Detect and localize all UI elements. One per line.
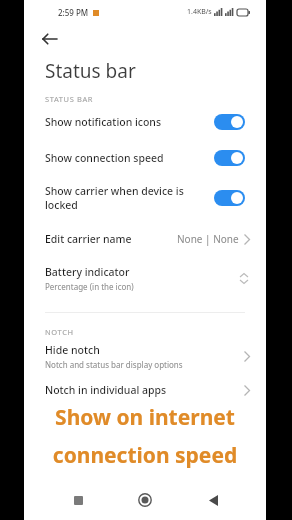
button[interactable]: Show carrier when device is locked bbox=[24, 176, 266, 220]
staticText: Show notification icons bbox=[45, 115, 214, 129]
staticText: Edit carrier name bbox=[45, 232, 177, 246]
staticText: connection speed bbox=[24, 441, 266, 470]
staticText: Battery indicator bbox=[45, 265, 130, 279]
button[interactable]: Edit carrier name bbox=[24, 220, 266, 258]
button[interactable]: Back bbox=[199, 486, 227, 514]
staticText: Notch in individual apps bbox=[45, 383, 167, 397]
button[interactable]: Notch in individual apps bbox=[24, 375, 266, 405]
staticText: Percentage (in the icon) bbox=[45, 281, 134, 292]
staticText: NOTCH bbox=[45, 327, 74, 337]
button[interactable]: Battery indicator bbox=[24, 258, 266, 298]
staticText: Hide notch bbox=[45, 343, 100, 357]
button[interactable]: Hide notch bbox=[24, 337, 266, 375]
staticText: Show carrier when device is locked bbox=[45, 184, 214, 212]
staticText: Status bar bbox=[45, 58, 136, 84]
staticText: Notch and status bar display options bbox=[45, 359, 183, 370]
staticText: STATUS BAR bbox=[45, 94, 94, 104]
staticText: None | None bbox=[177, 232, 239, 246]
button[interactable]: Back bbox=[24, 24, 266, 54]
staticText: Show connection speed bbox=[45, 151, 214, 165]
staticText: Show on internet bbox=[24, 403, 266, 432]
button[interactable]: Home bbox=[131, 486, 159, 514]
button[interactable]: Show notification icons bbox=[24, 104, 266, 140]
staticText: 2:59 PM bbox=[58, 7, 89, 18]
button[interactable]: Show connection speed bbox=[24, 140, 266, 176]
button[interactable]: Recents bbox=[64, 486, 92, 514]
staticText: 1.4KB/s bbox=[187, 7, 212, 17]
